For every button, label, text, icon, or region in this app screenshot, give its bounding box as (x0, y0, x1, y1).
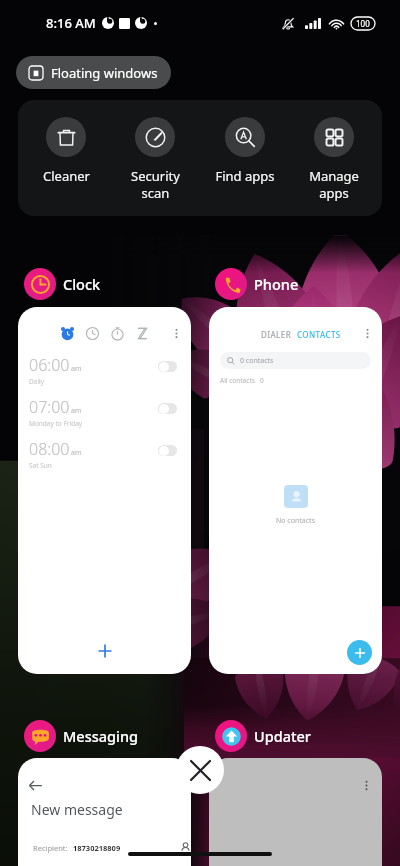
staticText: am (71, 448, 82, 458)
staticText: New message (31, 800, 123, 819)
button[interactable]: Close all (176, 746, 224, 794)
staticText: Find apps (215, 167, 275, 185)
staticText: 07:00 (29, 396, 70, 418)
staticText: Recipient: (33, 843, 68, 853)
staticText: Phone (254, 274, 299, 294)
button[interactable]: Add alarm (97, 643, 113, 659)
button[interactable]: 06:00 (18, 352, 191, 386)
button[interactable]: Floating windows (16, 56, 171, 89)
staticText: Floating windows (51, 64, 158, 82)
button[interactable]: CONTACTS (297, 329, 341, 340)
staticText: Cleaner (43, 167, 90, 185)
staticText: 08:00 (29, 438, 70, 460)
staticText: DIALER (261, 329, 292, 340)
staticText: CONTACTS (297, 329, 341, 340)
staticText: 18730218809 (73, 843, 121, 853)
button[interactable]: More options (361, 327, 374, 340)
staticText: 8:16 AM (46, 14, 96, 32)
staticText: Manage apps (309, 167, 359, 202)
staticText: Messaging (63, 726, 139, 746)
button[interactable]: Phone (215, 268, 299, 300)
button[interactable]: 07:00 (18, 394, 191, 428)
staticText: All contacts (220, 376, 255, 385)
button[interactable]: Alarm (18, 307, 191, 674)
staticText: 0 contacts (240, 356, 274, 366)
staticText: 06:00 (29, 354, 70, 376)
staticText: am (71, 406, 82, 416)
staticText: 0 (260, 376, 264, 385)
button[interactable]: Back (18, 758, 191, 866)
staticText: No contacts (276, 516, 315, 526)
staticText: 100 (356, 18, 370, 29)
button[interactable]: More options (170, 327, 183, 340)
button[interactable]: Cleaner (24, 100, 108, 185)
staticText: Monday to Friday (29, 419, 83, 428)
button[interactable]: 0 contacts (220, 352, 371, 369)
button[interactable]: Clock (24, 268, 101, 300)
button[interactable]: Timer (135, 326, 150, 341)
staticText: Sat Sun (29, 461, 52, 470)
button[interactable]: Alarm (60, 326, 75, 341)
staticText: Clock (63, 274, 101, 294)
button[interactable]: Security scan (113, 100, 197, 202)
staticText: Daily (29, 377, 45, 386)
button[interactable]: More options (360, 779, 373, 792)
button[interactable]: World clock (85, 326, 100, 341)
button[interactable]: Add contact (347, 640, 372, 665)
staticText: Security scan (131, 167, 180, 202)
staticText: Updater (254, 726, 311, 746)
button[interactable]: Manage apps (292, 100, 376, 202)
button[interactable]: Find apps (203, 100, 287, 185)
button[interactable]: Messaging (24, 720, 139, 752)
button[interactable]: 08:00 (18, 436, 191, 470)
button[interactable]: Updater (215, 720, 311, 752)
button[interactable]: Stopwatch (110, 326, 125, 341)
button[interactable]: Back (28, 778, 43, 793)
staticText: am (71, 364, 82, 374)
button[interactable]: More options (209, 758, 382, 866)
button[interactable]: DIALER (261, 329, 292, 340)
button[interactable]: DIALER (209, 307, 382, 674)
button[interactable]: Pick contact (180, 842, 191, 853)
